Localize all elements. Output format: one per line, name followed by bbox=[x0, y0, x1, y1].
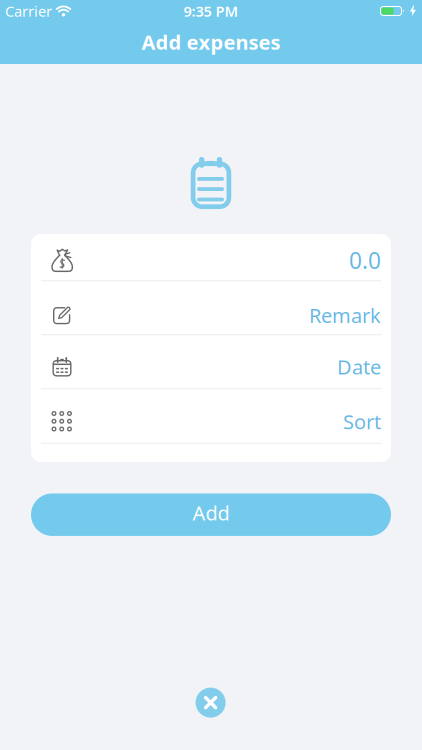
button[interactable]: Date bbox=[31, 335, 391, 388]
button[interactable]: Close bbox=[196, 688, 226, 718]
staticText: 0.0 bbox=[349, 245, 381, 275]
staticText: Add expenses bbox=[141, 29, 280, 55]
staticText: Add bbox=[192, 499, 229, 526]
staticText: Date bbox=[337, 353, 381, 380]
staticText: Sort bbox=[343, 408, 381, 435]
button[interactable]: Remark bbox=[31, 281, 391, 334]
button[interactable]: Sort bbox=[31, 389, 391, 443]
staticText: 9:35 PM bbox=[183, 1, 238, 21]
button[interactable]: 0.0 bbox=[31, 234, 391, 280]
staticText: Remark bbox=[309, 302, 381, 329]
button[interactable]: Add bbox=[31, 493, 391, 536]
staticText: Carrier bbox=[5, 1, 52, 21]
